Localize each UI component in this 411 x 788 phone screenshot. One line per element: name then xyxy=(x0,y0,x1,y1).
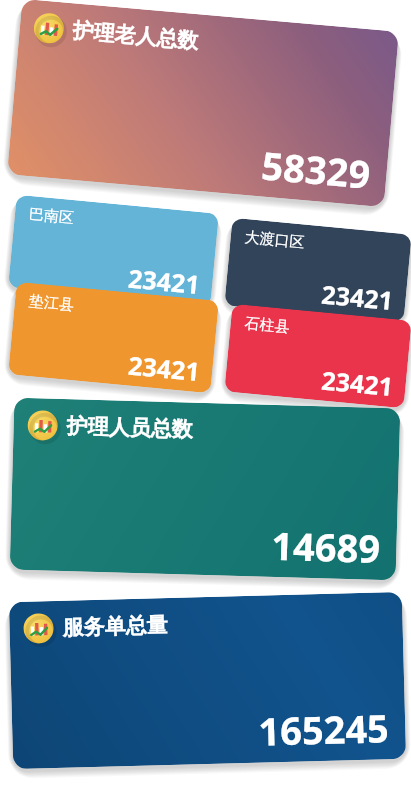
staticText: 58329 xyxy=(260,138,373,200)
button[interactable]: 大渡口区 xyxy=(224,218,411,322)
staticText: 23421 xyxy=(320,362,395,403)
button[interactable]: 护理人员总数 xyxy=(10,398,400,580)
button[interactable]: 服务单总量 xyxy=(9,592,406,769)
button[interactable]: 巴南区 xyxy=(8,195,219,306)
staticText: 巴南区 xyxy=(28,205,75,228)
staticText: 165245 xyxy=(258,701,390,757)
staticText: 23421 xyxy=(320,276,395,317)
staticText: 垫江县 xyxy=(28,292,75,315)
staticText: 23421 xyxy=(127,348,202,388)
button[interactable]: 护理老人总数 xyxy=(7,0,399,207)
staticText: 护理老人总数 xyxy=(72,17,199,54)
staticText: 服务单总量 xyxy=(62,612,168,641)
staticText: 护理人员总数 xyxy=(66,413,193,443)
staticText: 大渡口区 xyxy=(244,228,305,253)
staticText: 23421 xyxy=(127,261,202,301)
staticText: 14689 xyxy=(271,519,381,574)
button[interactable]: 垫江县 xyxy=(8,282,219,393)
button[interactable]: 石柱县 xyxy=(224,304,411,408)
staticText: 石柱县 xyxy=(244,314,290,337)
